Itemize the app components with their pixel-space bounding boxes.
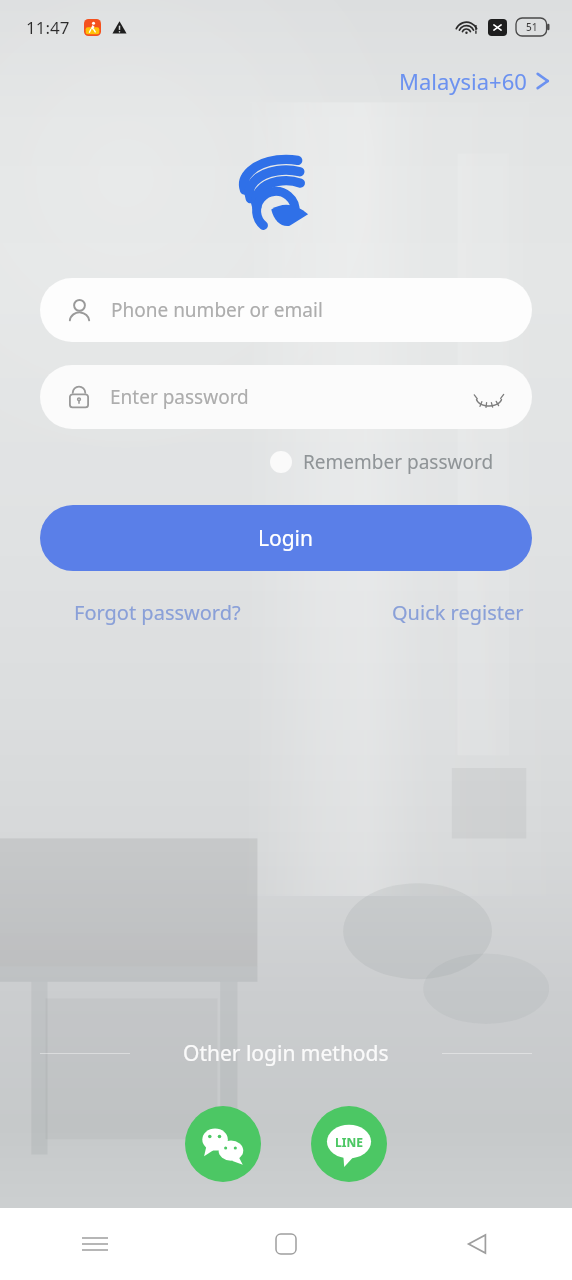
button[interactable]: Show password: [470, 384, 508, 410]
staticText: 51: [526, 20, 538, 34]
button[interactable]: Home: [190, 1208, 381, 1280]
staticText: LINE: [335, 1134, 363, 1150]
button[interactable]: Remember password: [266, 441, 498, 483]
button[interactable]: Back: [381, 1208, 572, 1280]
button[interactable]: Forgot password?: [40, 595, 275, 630]
staticText: Malaysia+60: [399, 66, 527, 96]
button[interactable]: Login with WeChat: [185, 1106, 261, 1182]
staticText: Other login methods: [183, 1039, 389, 1068]
staticText: 11:47: [26, 16, 70, 39]
button[interactable]: Malaysia+60: [379, 54, 572, 108]
button[interactable]: Recent apps: [0, 1208, 190, 1280]
staticText: Phone number or email: [111, 297, 323, 323]
staticText: Login: [258, 524, 314, 553]
staticText: Enter password: [110, 384, 249, 410]
staticText: Quick register: [392, 599, 524, 626]
button[interactable]: Phone number or email: [40, 278, 532, 342]
button[interactable]: Enter password: [40, 365, 532, 429]
button[interactable]: Quick register: [384, 595, 532, 630]
staticText: Remember password: [303, 449, 494, 475]
button[interactable]: Login: [40, 505, 532, 571]
button[interactable]: Login with LINE: [311, 1106, 387, 1182]
staticText: Forgot password?: [74, 599, 241, 626]
